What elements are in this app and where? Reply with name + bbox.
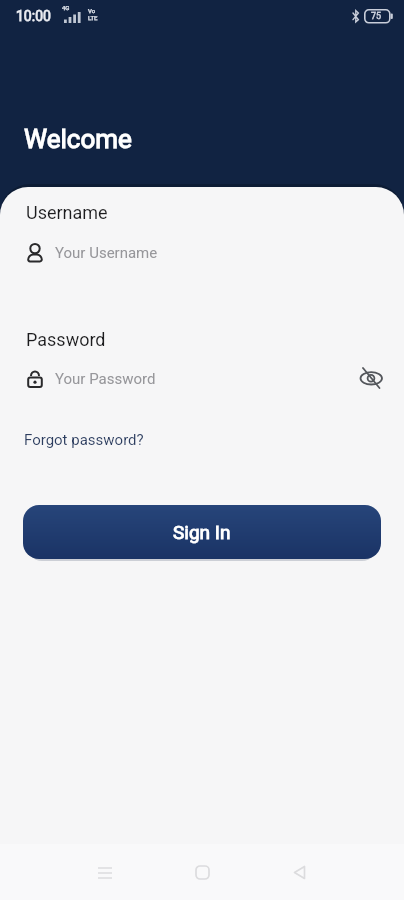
staticText: Username xyxy=(26,202,108,223)
button[interactable]: Your Password xyxy=(24,365,324,393)
staticText: Password xyxy=(26,329,106,350)
button[interactable]: Your Username xyxy=(24,239,324,267)
button[interactable] xyxy=(195,865,211,881)
staticText: Sign In xyxy=(173,521,231,543)
staticText: Vo LTE xyxy=(88,7,98,21)
button[interactable]: Sign In xyxy=(23,505,381,559)
staticText: 4G xyxy=(62,4,70,11)
staticText: 75 xyxy=(371,11,382,22)
staticText: 10:00 xyxy=(16,8,51,24)
button[interactable] xyxy=(358,365,384,391)
staticText: Welcome xyxy=(24,124,132,154)
button[interactable] xyxy=(292,865,308,881)
staticText: Your Username xyxy=(55,244,158,262)
button[interactable]: Forgot password? xyxy=(24,431,144,449)
staticText: Your Password xyxy=(55,370,156,388)
button[interactable] xyxy=(98,866,113,881)
